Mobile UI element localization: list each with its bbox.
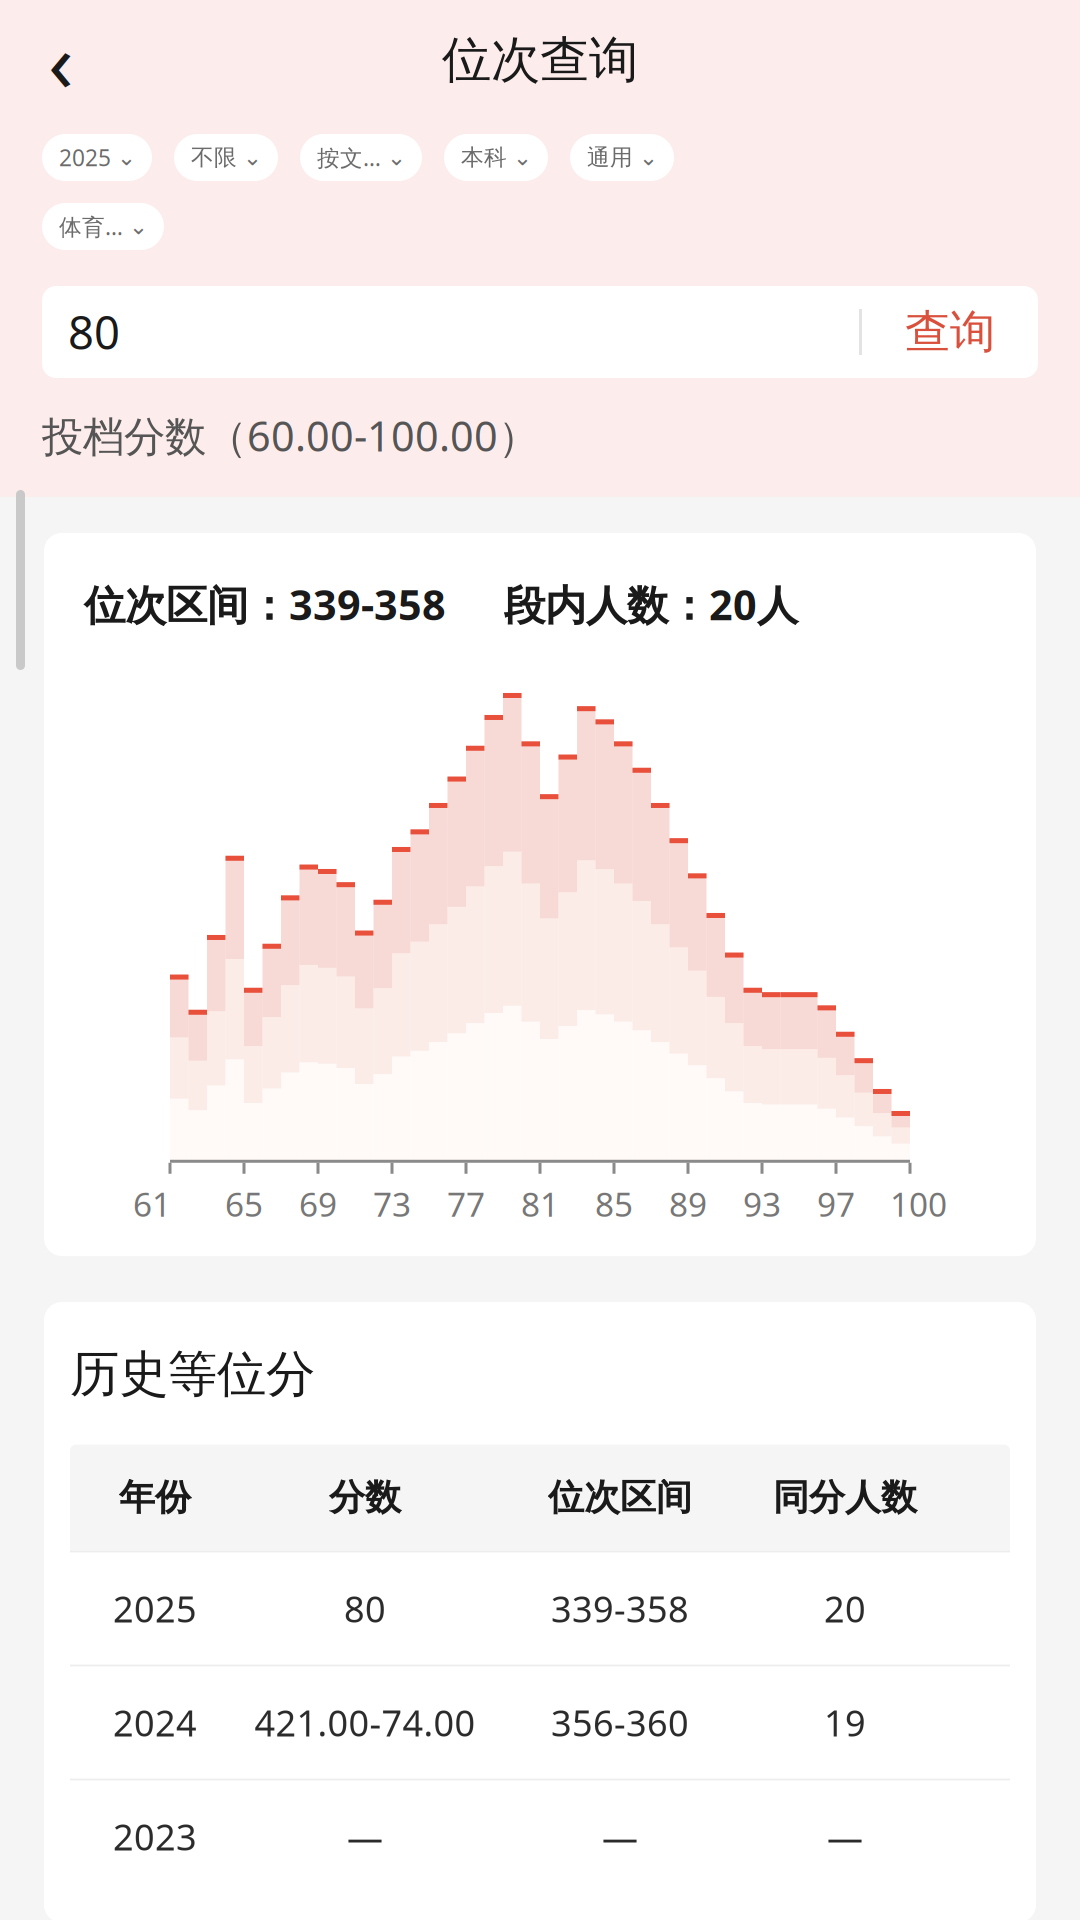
button[interactable]: 不限 (174, 134, 278, 181)
staticText: 19 (824, 1699, 866, 1746)
staticText: 不限 (191, 144, 237, 171)
staticText: 通用 (587, 144, 633, 171)
button[interactable]: 本科 (444, 134, 548, 181)
button[interactable]: 按文… (300, 134, 422, 181)
staticText: — (827, 1813, 863, 1860)
staticText: 89 (669, 1182, 707, 1226)
staticText: 2024 (113, 1699, 197, 1746)
staticText: 85 (595, 1182, 633, 1226)
staticText: 2025 (113, 1585, 197, 1632)
staticText: ⌄ (387, 145, 406, 170)
staticText: ⌄ (117, 145, 136, 170)
staticText: — (602, 1813, 638, 1860)
staticText: 历史等位分 (70, 1344, 315, 1405)
staticText: 356-360 (551, 1699, 689, 1746)
staticText: 2023 (113, 1813, 197, 1860)
staticText: 339-358 (551, 1585, 689, 1632)
staticText: 投档分数（60.00-100.00） (42, 408, 539, 463)
staticText: 80 (68, 302, 120, 362)
staticText: 年份 (119, 1475, 191, 1520)
staticText: ⌄ (243, 145, 262, 170)
staticText: 段内人数：20人 (504, 577, 798, 632)
staticText: 61 (133, 1182, 171, 1226)
staticText: 65 (225, 1182, 263, 1226)
staticText: 69 (299, 1182, 337, 1226)
staticText: 本科 (461, 144, 507, 171)
staticText: 体育… (59, 211, 123, 241)
staticText: 421.00-74.00 (254, 1699, 475, 1746)
staticText: ⌄ (639, 145, 658, 170)
staticText: 93 (743, 1182, 781, 1226)
staticText: 81 (521, 1182, 559, 1226)
staticText: 73 (373, 1182, 411, 1226)
staticText: 位次查询 (442, 30, 638, 90)
button[interactable]: 通用 (570, 134, 674, 181)
button[interactable]: 体育… (42, 203, 164, 250)
staticText: ‹ (48, 5, 74, 115)
staticText: 分数 (329, 1475, 401, 1520)
staticText: — (347, 1813, 383, 1860)
staticText: ⌄ (513, 145, 532, 170)
staticText: 80 (344, 1585, 386, 1632)
staticText: ⌄ (129, 214, 148, 239)
staticText: 位次区间：339-358 (84, 577, 446, 632)
staticText: 同分人数 (773, 1475, 917, 1520)
button[interactable]: 2025 (42, 134, 152, 181)
staticText: 20 (824, 1585, 866, 1632)
staticText: 100 (890, 1182, 947, 1226)
staticText: 按文… (317, 142, 381, 172)
staticText: 77 (447, 1182, 485, 1226)
staticText: 2025 (59, 142, 111, 172)
button[interactable]: Back (24, 23, 98, 97)
staticText: 查询 (905, 304, 995, 360)
staticText: 97 (817, 1182, 855, 1226)
button[interactable]: 查询 (862, 286, 1038, 378)
staticText: 位次区间 (548, 1475, 692, 1520)
